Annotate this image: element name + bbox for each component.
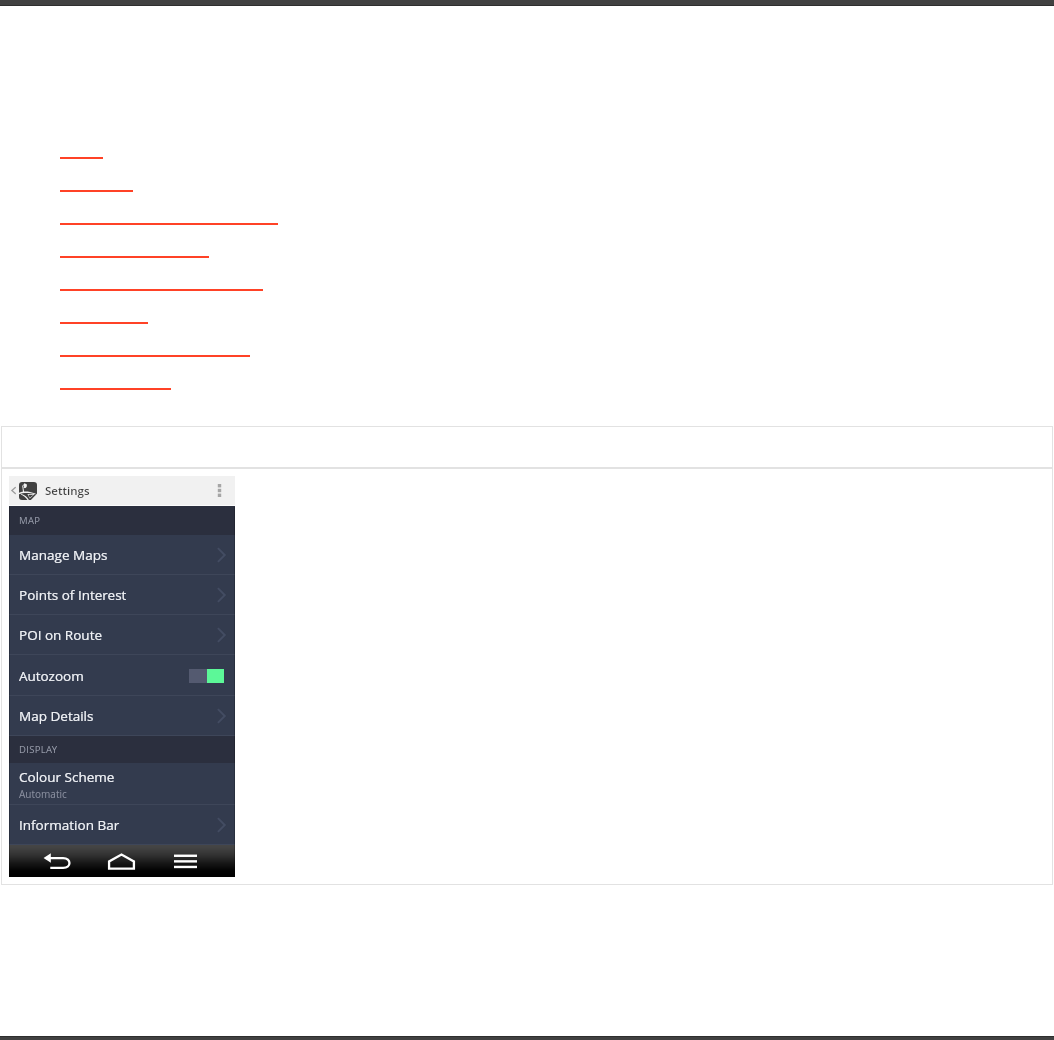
button[interactable]: [60, 271, 263, 295]
button[interactable]: Autozoom: [9, 655, 235, 696]
button[interactable]: Back: [42, 849, 72, 873]
button[interactable]: [60, 172, 133, 196]
staticText: Automatic: [19, 787, 67, 801]
button[interactable]: [60, 238, 209, 262]
button[interactable]: Manage Maps: [9, 535, 235, 575]
button[interactable]: Information Bar: [9, 805, 235, 845]
staticText: Autozoom: [19, 667, 84, 685]
staticText: Points of Interest: [19, 586, 127, 604]
button[interactable]: [60, 304, 148, 328]
button[interactable]: Colour Scheme: [9, 763, 235, 805]
button[interactable]: Points of Interest: [9, 575, 235, 615]
staticText: Manage Maps: [19, 546, 108, 564]
button[interactable]: Back: [9, 476, 18, 505]
staticText: MAP: [19, 514, 41, 527]
staticText: Settings: [45, 483, 90, 499]
button[interactable]: More options: [204, 476, 235, 505]
staticText: POI on Route: [19, 626, 102, 644]
button[interactable]: Recent apps: [170, 849, 200, 873]
button[interactable]: [60, 205, 278, 229]
button[interactable]: Home: [106, 849, 136, 873]
button[interactable]: [60, 139, 103, 163]
staticText: Map Details: [19, 707, 94, 725]
button[interactable]: [60, 370, 171, 394]
staticText: Colour Scheme: [19, 768, 115, 786]
staticText: Information Bar: [19, 816, 120, 834]
button[interactable]: Map Details: [9, 696, 235, 736]
staticText: DISPLAY: [19, 743, 58, 756]
button[interactable]: [60, 337, 250, 361]
button[interactable]: POI on Route: [9, 615, 235, 655]
